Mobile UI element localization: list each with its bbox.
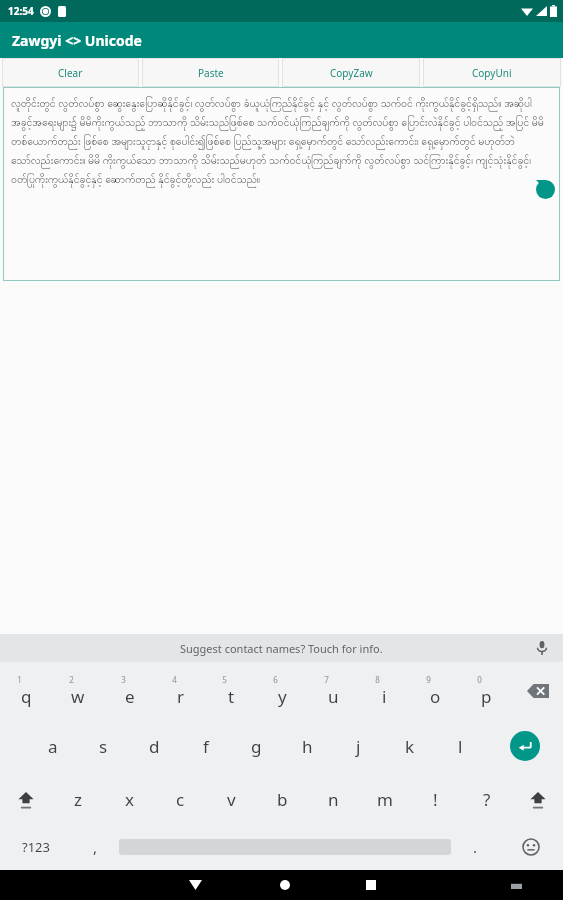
button[interactable]: Home [268, 870, 302, 900]
staticText: p [481, 685, 492, 708]
staticText: n [328, 788, 339, 811]
button[interactable]: CopyUni [423, 58, 561, 87]
staticText: j [356, 735, 361, 758]
staticText: z [74, 788, 82, 811]
button[interactable]: x [104, 773, 155, 826]
button[interactable]: Paste [142, 58, 279, 87]
staticText: o [430, 685, 441, 708]
button[interactable]: j [333, 719, 384, 773]
button[interactable]: 8 [359, 662, 410, 719]
button[interactable]: Shift [512, 773, 563, 826]
button[interactable]: Recent apps [354, 870, 388, 900]
staticText: Paste [198, 66, 224, 80]
staticText: ?123 [22, 838, 50, 856]
staticText: Clear [58, 66, 83, 80]
button[interactable]: ! [410, 773, 461, 826]
staticText: s [99, 735, 108, 758]
button[interactable]: Shift [0, 773, 52, 826]
button[interactable]: k [384, 719, 435, 773]
button[interactable]: h [282, 719, 333, 773]
button[interactable]: s [78, 719, 129, 773]
staticText: c [176, 788, 185, 811]
staticText: l [458, 735, 463, 758]
staticText: i [382, 685, 387, 708]
staticText: w [71, 685, 85, 708]
staticText: v [227, 788, 236, 811]
staticText: f [203, 735, 209, 758]
staticText: 12:54 [8, 4, 34, 18]
other: Text cursor handle [536, 180, 555, 199]
button[interactable]: b [257, 773, 308, 826]
staticText: m [377, 788, 393, 811]
staticText: h [302, 735, 313, 758]
staticText: လူတိုင်းတွင် လွတ်လပ်စွာ ဆွေးနွေးပြောဆိုန… [11, 96, 550, 188]
staticText: CopyZaw [330, 66, 373, 80]
staticText: Suggest contact names? Touch for info. [180, 641, 383, 656]
button[interactable]: v [206, 773, 257, 826]
staticText: 3 [121, 674, 126, 685]
button[interactable]: ? [461, 773, 512, 826]
staticText: d [149, 735, 160, 758]
staticText: 1 [17, 674, 22, 685]
button[interactable]: 5 [206, 662, 257, 719]
staticText: r [177, 685, 185, 708]
staticText: e [125, 685, 135, 708]
staticText: y [278, 685, 287, 708]
button[interactable]: Enter [486, 719, 563, 773]
button[interactable]: 1 [0, 662, 52, 719]
staticText: Zawgyi <> Unicode [12, 31, 142, 50]
button[interactable]: a [27, 719, 78, 773]
button[interactable]: 2 [52, 662, 104, 719]
button[interactable]: z [52, 773, 104, 826]
button[interactable]: m [359, 773, 410, 826]
staticText: , [93, 837, 98, 857]
staticText: a [48, 735, 58, 758]
button[interactable]: 7 [308, 662, 359, 719]
staticText: t [228, 685, 235, 708]
button[interactable]: 4 [155, 662, 206, 719]
button[interactable]: l [435, 719, 486, 773]
staticText: . [473, 837, 478, 857]
staticText: k [405, 735, 415, 758]
staticText: b [277, 788, 288, 811]
button[interactable]: c [155, 773, 206, 826]
button[interactable]: CopyZaw [282, 58, 420, 87]
staticText: 2 [69, 674, 74, 685]
button[interactable]: လူတိုင်းတွင် လွတ်လပ်စွာ ဆွေးနွေးပြောဆိုန… [3, 87, 560, 281]
button[interactable]: d [129, 719, 180, 773]
button[interactable]: 3 [104, 662, 155, 719]
staticText: 7 [324, 674, 329, 685]
button[interactable]: Suggest contact names? Touch for info. [0, 634, 563, 662]
staticText: u [328, 685, 339, 708]
staticText: 5 [222, 674, 227, 685]
staticText: x [125, 788, 134, 811]
button[interactable]: 9 [410, 662, 461, 719]
button[interactable]: , [71, 826, 119, 868]
staticText: 9 [426, 674, 431, 685]
staticText: 8 [375, 674, 380, 685]
button[interactable]: Clear [2, 58, 139, 87]
staticText: 0 [477, 674, 482, 685]
button[interactable]: f [180, 719, 231, 773]
staticText: ! [433, 788, 438, 811]
button[interactable]: Back [178, 870, 212, 900]
other: Voice input [535, 641, 549, 655]
button[interactable]: . [451, 826, 499, 868]
button[interactable]: ?123 [0, 826, 71, 868]
button[interactable]: g [231, 719, 282, 773]
button[interactable]: n [308, 773, 359, 826]
button[interactable]: 0 [461, 662, 512, 719]
staticText: 4 [172, 674, 177, 685]
staticText: 6 [273, 674, 278, 685]
staticText: CopyUni [472, 66, 512, 80]
staticText: ? [483, 788, 491, 811]
button[interactable]: Backspace [512, 662, 563, 719]
button[interactable]: 6 [257, 662, 308, 719]
staticText: g [251, 735, 262, 758]
staticText: q [21, 685, 32, 708]
other: Keyboard active [504, 873, 528, 897]
button[interactable]: Emoji [499, 826, 563, 868]
